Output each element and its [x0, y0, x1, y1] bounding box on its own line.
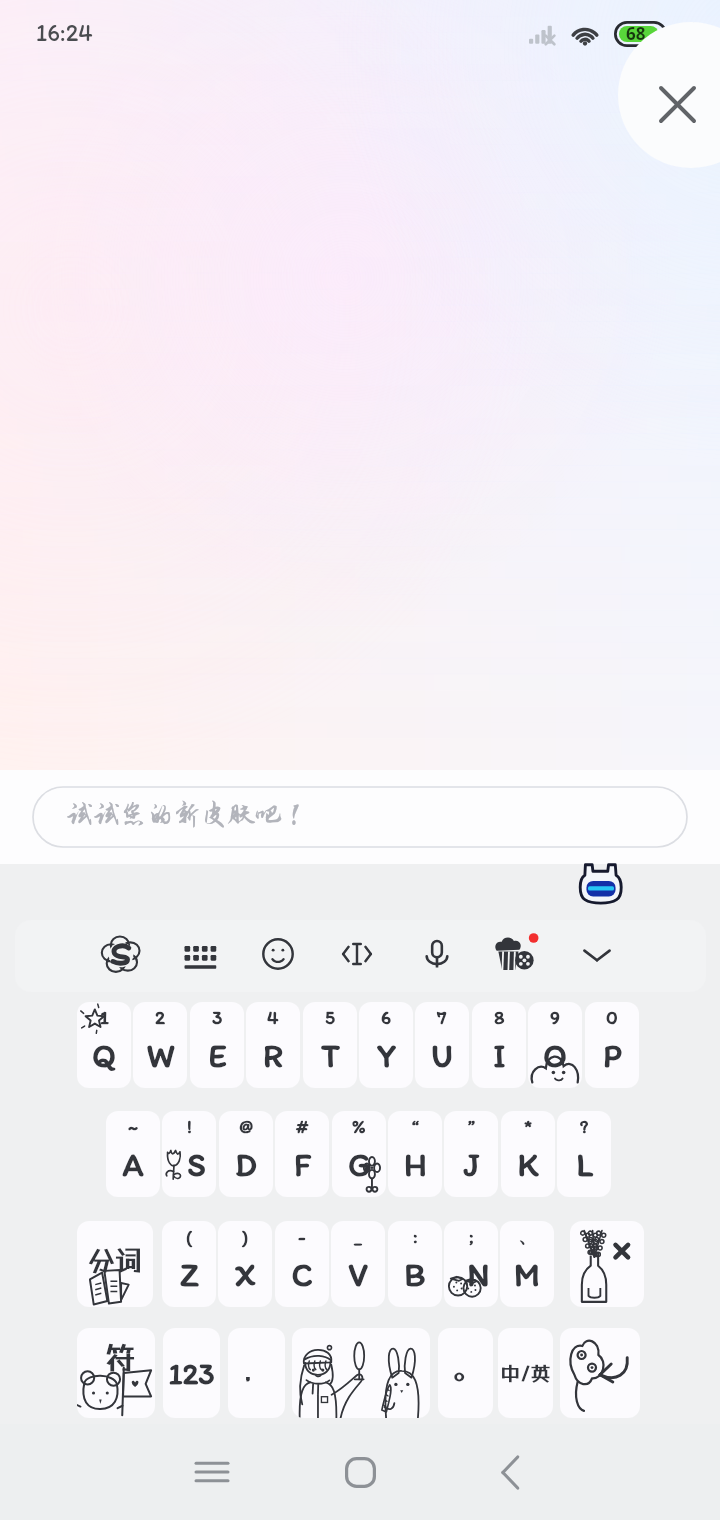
staticText: ): [242, 1225, 249, 1248]
button[interactable]: Close: [618, 22, 720, 168]
button[interactable]: ): [218, 1221, 272, 1307]
staticText: J: [463, 1145, 480, 1185]
staticText: ?: [580, 1115, 589, 1138]
staticText: Z: [180, 1255, 199, 1295]
button[interactable]: 。: [438, 1328, 493, 1418]
staticText: #: [296, 1115, 309, 1138]
staticText: T: [321, 1036, 340, 1076]
button[interactable]: Enter: [560, 1328, 640, 1418]
button[interactable]: *: [501, 1111, 555, 1197]
staticText: ，: [243, 1354, 270, 1385]
button[interactable]: “: [388, 1111, 442, 1197]
button[interactable]: 1: [77, 1002, 131, 1088]
button[interactable]: 6: [359, 1002, 413, 1088]
staticText: _: [354, 1225, 362, 1248]
staticText: A: [122, 1145, 144, 1185]
button[interactable]: Emoji: [250, 926, 306, 982]
staticText: W: [146, 1036, 175, 1076]
staticText: L: [576, 1145, 593, 1185]
staticText: 5: [325, 1006, 335, 1029]
button[interactable]: 2: [133, 1002, 187, 1088]
button[interactable]: ?: [557, 1111, 611, 1197]
staticText: 9: [550, 1006, 560, 1029]
staticText: V: [348, 1255, 368, 1295]
staticText: ”: [468, 1115, 475, 1138]
button[interactable]: Sogou input: [93, 926, 149, 982]
button[interactable]: -: [275, 1221, 329, 1307]
staticText: I: [493, 1036, 506, 1076]
button[interactable]: 4: [246, 1002, 300, 1088]
staticText: Y: [377, 1036, 396, 1076]
button[interactable]: 分词: [77, 1221, 153, 1307]
button[interactable]: _: [331, 1221, 385, 1307]
button[interactable]: Recent apps: [182, 1442, 242, 1502]
staticText: U: [431, 1036, 453, 1076]
staticText: ~: [128, 1115, 138, 1138]
staticText: 7: [437, 1006, 447, 1029]
staticText: 试试您的新皮肤吧！: [66, 800, 309, 830]
staticText: O: [543, 1036, 567, 1076]
button[interactable]: Numbers: [163, 1328, 220, 1418]
button[interactable]: 、: [500, 1221, 554, 1307]
staticText: 4: [267, 1006, 279, 1029]
staticText: K: [517, 1145, 539, 1185]
button[interactable]: Voice input: [409, 926, 465, 982]
button[interactable]: #: [275, 1111, 329, 1197]
staticText: 中/英: [500, 1361, 551, 1385]
staticText: N: [467, 1255, 490, 1295]
button[interactable]: Backspace: [570, 1221, 644, 1307]
staticText: Q: [92, 1036, 116, 1076]
button[interactable]: 9: [528, 1002, 582, 1088]
staticText: 68: [626, 22, 646, 45]
staticText: 8: [494, 1006, 505, 1029]
staticText: C: [291, 1255, 313, 1295]
button[interactable]: ~: [106, 1111, 160, 1197]
staticText: “: [412, 1115, 419, 1138]
staticText: G: [348, 1145, 371, 1185]
staticText: D: [235, 1145, 257, 1185]
staticText: P: [603, 1036, 622, 1076]
button[interactable]: 试试您的新皮肤吧！: [32, 786, 688, 848]
button[interactable]: ;: [444, 1221, 498, 1307]
staticText: F: [294, 1145, 311, 1185]
button[interactable]: @: [219, 1111, 273, 1197]
staticText: 、: [518, 1225, 537, 1249]
button[interactable]: ，: [228, 1328, 285, 1418]
staticText: :: [413, 1225, 418, 1248]
staticText: R: [263, 1036, 283, 1076]
staticText: S: [187, 1145, 206, 1185]
button[interactable]: (: [162, 1221, 216, 1307]
staticText: %: [352, 1115, 366, 1138]
button[interactable]: ”: [444, 1111, 498, 1197]
button[interactable]: !: [162, 1111, 216, 1197]
staticText: X: [234, 1255, 256, 1295]
button[interactable]: Keyboard layout: [171, 926, 227, 982]
button[interactable]: 8: [472, 1002, 526, 1088]
staticText: 16:24: [36, 18, 93, 47]
button[interactable]: Home: [330, 1442, 390, 1502]
staticText: -: [298, 1225, 306, 1248]
staticText: 6: [381, 1006, 392, 1029]
button[interactable]: Space: [292, 1328, 430, 1418]
staticText: !: [187, 1115, 192, 1138]
staticText: H: [404, 1145, 427, 1185]
button[interactable]: Chinese English toggle: [498, 1328, 553, 1418]
button[interactable]: 7: [415, 1002, 469, 1088]
staticText: *: [524, 1115, 533, 1138]
button[interactable]: 0: [585, 1002, 639, 1088]
button[interactable]: %: [332, 1111, 386, 1197]
button[interactable]: Fun stickers: [488, 926, 544, 982]
staticText: @: [239, 1115, 254, 1138]
button[interactable]: 5: [303, 1002, 357, 1088]
button[interactable]: Hide keyboard: [569, 926, 625, 982]
staticText: 0: [606, 1006, 618, 1029]
staticText: 3: [212, 1006, 223, 1029]
button[interactable]: 符: [77, 1328, 155, 1418]
button[interactable]: :: [388, 1221, 442, 1307]
button[interactable]: Sogou assistant: [575, 858, 627, 910]
button[interactable]: Back: [480, 1442, 540, 1502]
staticText: 分词: [88, 1244, 142, 1276]
button[interactable]: 3: [190, 1002, 244, 1088]
staticText: 123: [168, 1355, 215, 1391]
button[interactable]: Text editing: [329, 926, 385, 982]
